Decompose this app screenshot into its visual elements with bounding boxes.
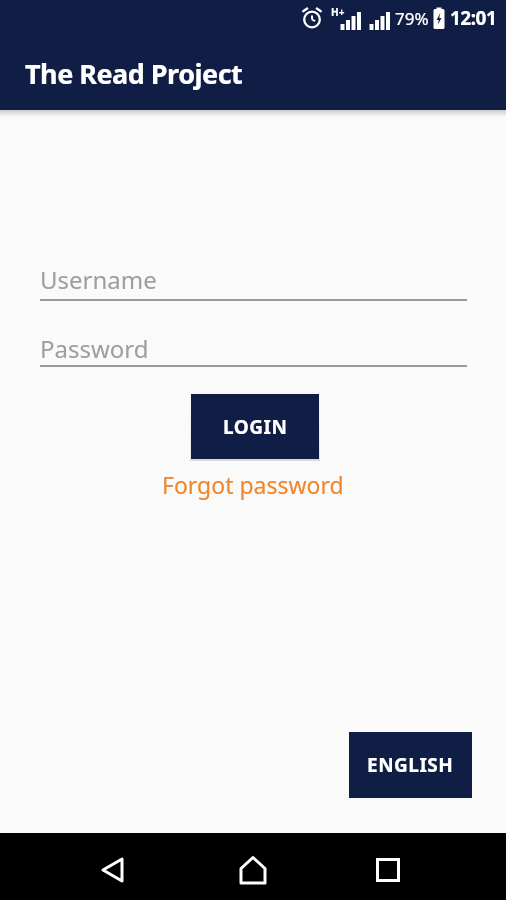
staticText: 12:01 (450, 5, 497, 31)
staticText: Password (40, 332, 149, 365)
staticText: The Read Project (25, 55, 243, 92)
button[interactable]: Password (40, 327, 467, 367)
staticText: Username (40, 263, 157, 296)
button[interactable]: LOGIN (191, 394, 319, 459)
button[interactable] (85, 833, 141, 900)
button[interactable] (225, 833, 281, 900)
button[interactable] (360, 833, 416, 900)
button[interactable]: ENGLISH (349, 732, 472, 798)
staticText: H+ (331, 5, 345, 19)
staticText: LOGIN (223, 414, 288, 440)
staticText: ENGLISH (367, 752, 454, 778)
button[interactable]: Forgot password (162, 469, 344, 500)
button[interactable]: Username (40, 258, 467, 301)
staticText: 79% (395, 7, 429, 30)
